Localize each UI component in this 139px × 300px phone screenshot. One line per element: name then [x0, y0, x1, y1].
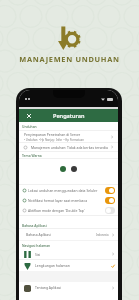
staticText: Sisi [35, 252, 111, 257]
staticText: Tema Warna [22, 153, 42, 157]
button[interactable]: Aktifkan mode dengan 'Double Tap' [19, 205, 118, 215]
staticText: Aktifkan mode dengan 'Double Tap' [28, 208, 105, 213]
staticText: MANAJEMEN UNDUHAN [19, 54, 120, 64]
button[interactable]: Sisi [19, 249, 118, 259]
button[interactable]: Tentang Aplikasi [19, 282, 118, 293]
button[interactable]: Penyimpanan Penetrahan di Server [19, 131, 118, 142]
staticText: • Unduhan • Hp Nanjuy : Infor • Hp Porma… [24, 138, 84, 142]
staticText: Pengaturan [53, 112, 85, 120]
button[interactable]: Tutup [24, 111, 33, 120]
button[interactable]: Lokasi unduhan menggunakan data Seluler [19, 185, 118, 195]
button[interactable]: Tema hijau [60, 166, 66, 172]
button[interactable]: Aktif [105, 197, 115, 204]
staticText: Lokasi unduhan menggunakan data Seluler [28, 188, 105, 193]
staticText: Notifikasi hemat layar saat membaca [28, 198, 105, 203]
button[interactable]: Nonaktif [105, 207, 115, 214]
staticText: Penyimpanan Penetrahan di Server [24, 132, 81, 137]
staticText: Unduhan [22, 124, 37, 128]
button[interactable]: Bahasa Aplikasi [19, 229, 118, 240]
button[interactable]: Lengkungan halaman [19, 260, 118, 271]
staticText: Bahasa Aplikasi [22, 223, 47, 227]
button[interactable]: Aktif [105, 187, 115, 194]
button[interactable]: Manajemen unduhan: Tidak ada berkas ters… [19, 143, 118, 151]
button[interactable]: Notifikasi hemat layar saat membaca [19, 195, 118, 205]
staticText: Lengkungan halaman [35, 263, 111, 268]
staticText: Manajemen unduhan: Tidak ada berkas ters… [31, 145, 110, 150]
staticText: Indonesia [96, 233, 109, 237]
staticText: Navigasi halaman [22, 243, 51, 247]
staticText: Tentang Aplikasi [35, 285, 111, 290]
button[interactable]: Tema gelap [71, 166, 77, 172]
staticText: Bahasa Aplikasi [26, 232, 96, 237]
